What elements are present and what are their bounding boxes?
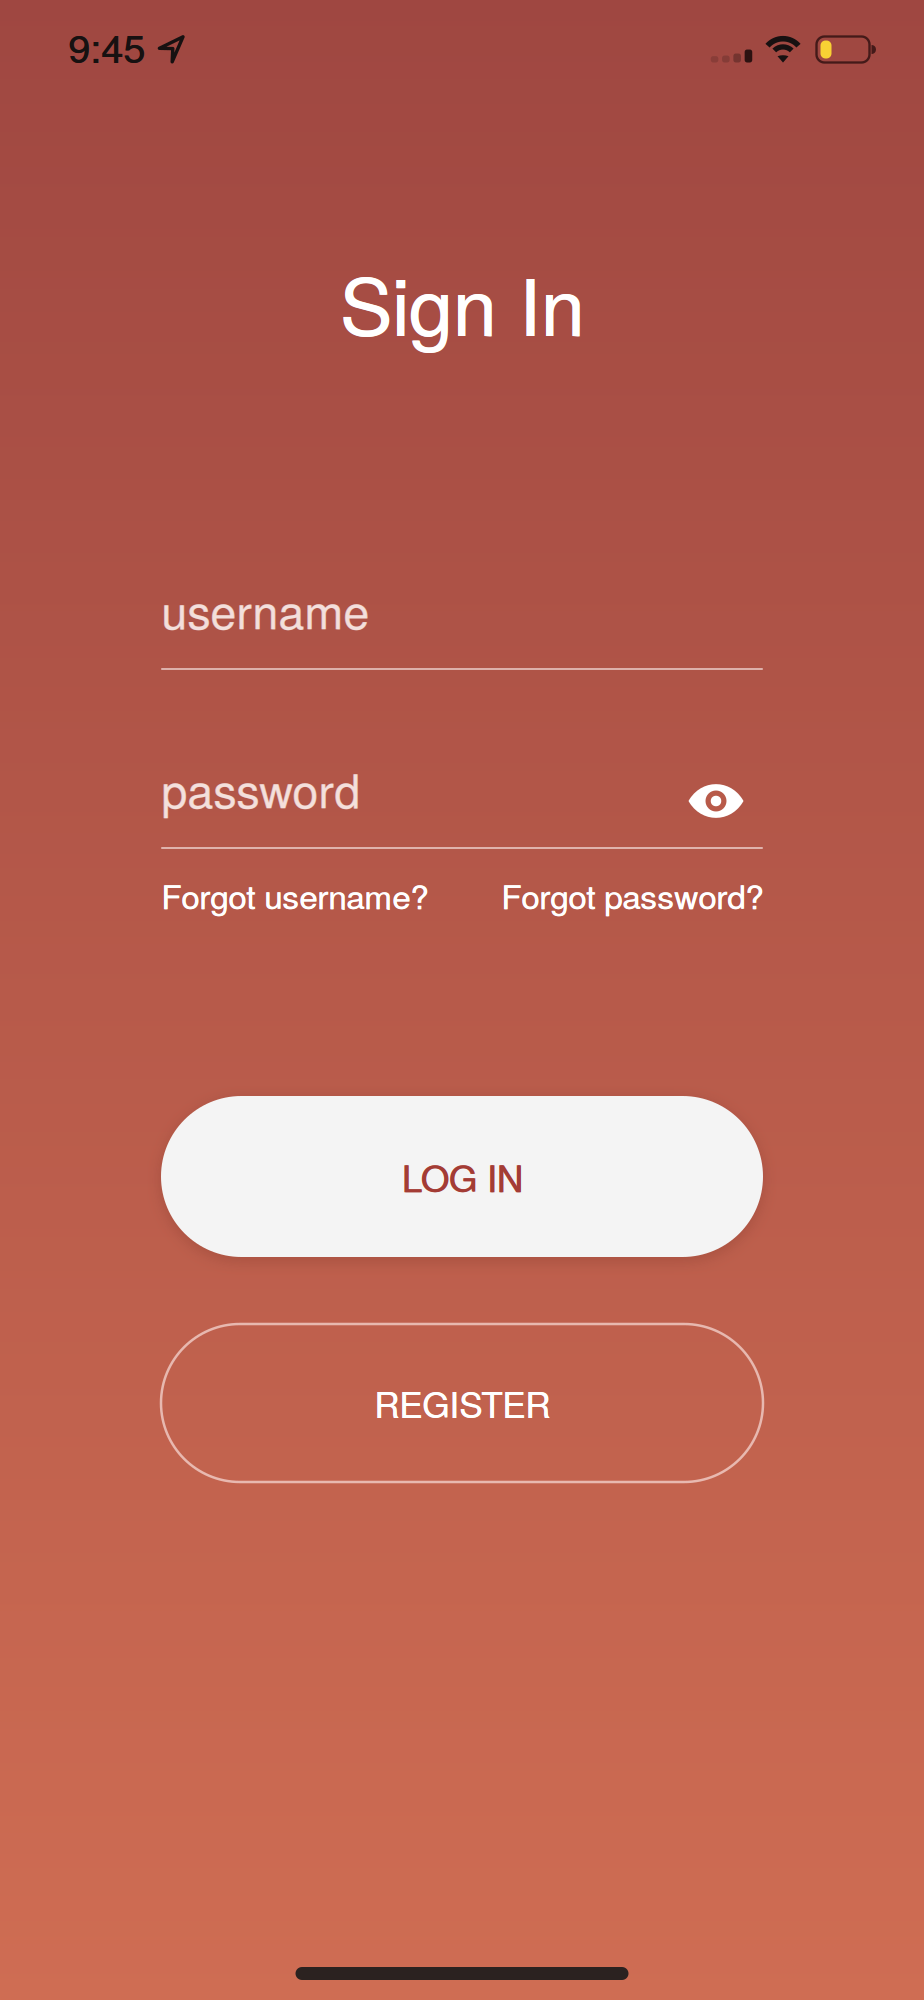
staticText: Forgot password? xyxy=(501,871,763,919)
staticText: Forgot username? xyxy=(162,871,429,919)
staticText: password xyxy=(161,755,360,821)
staticText: password xyxy=(162,755,361,821)
staticText: LOG IN xyxy=(402,1150,523,1202)
staticText: Forgot password? xyxy=(502,871,764,919)
staticText: username xyxy=(162,576,370,642)
button[interactable]: Forgot username? xyxy=(161,872,428,918)
staticText: REGISTER xyxy=(374,1378,550,1428)
staticText: 9:45 xyxy=(68,18,145,74)
staticText: LOG IN xyxy=(401,1150,522,1202)
button[interactable]: REGISTER xyxy=(161,1324,763,1482)
button[interactable]: Forgot password? xyxy=(501,872,763,918)
staticText: username xyxy=(161,576,369,642)
staticText: Sign In xyxy=(339,246,584,358)
button[interactable]: Show password xyxy=(688,773,763,816)
staticText: Forgot username? xyxy=(161,871,428,919)
staticText: REGISTER xyxy=(375,1378,551,1428)
button[interactable]: LOG IN xyxy=(161,1096,763,1257)
staticText: 9:45 xyxy=(69,18,146,74)
staticText: Sign In xyxy=(340,246,585,358)
